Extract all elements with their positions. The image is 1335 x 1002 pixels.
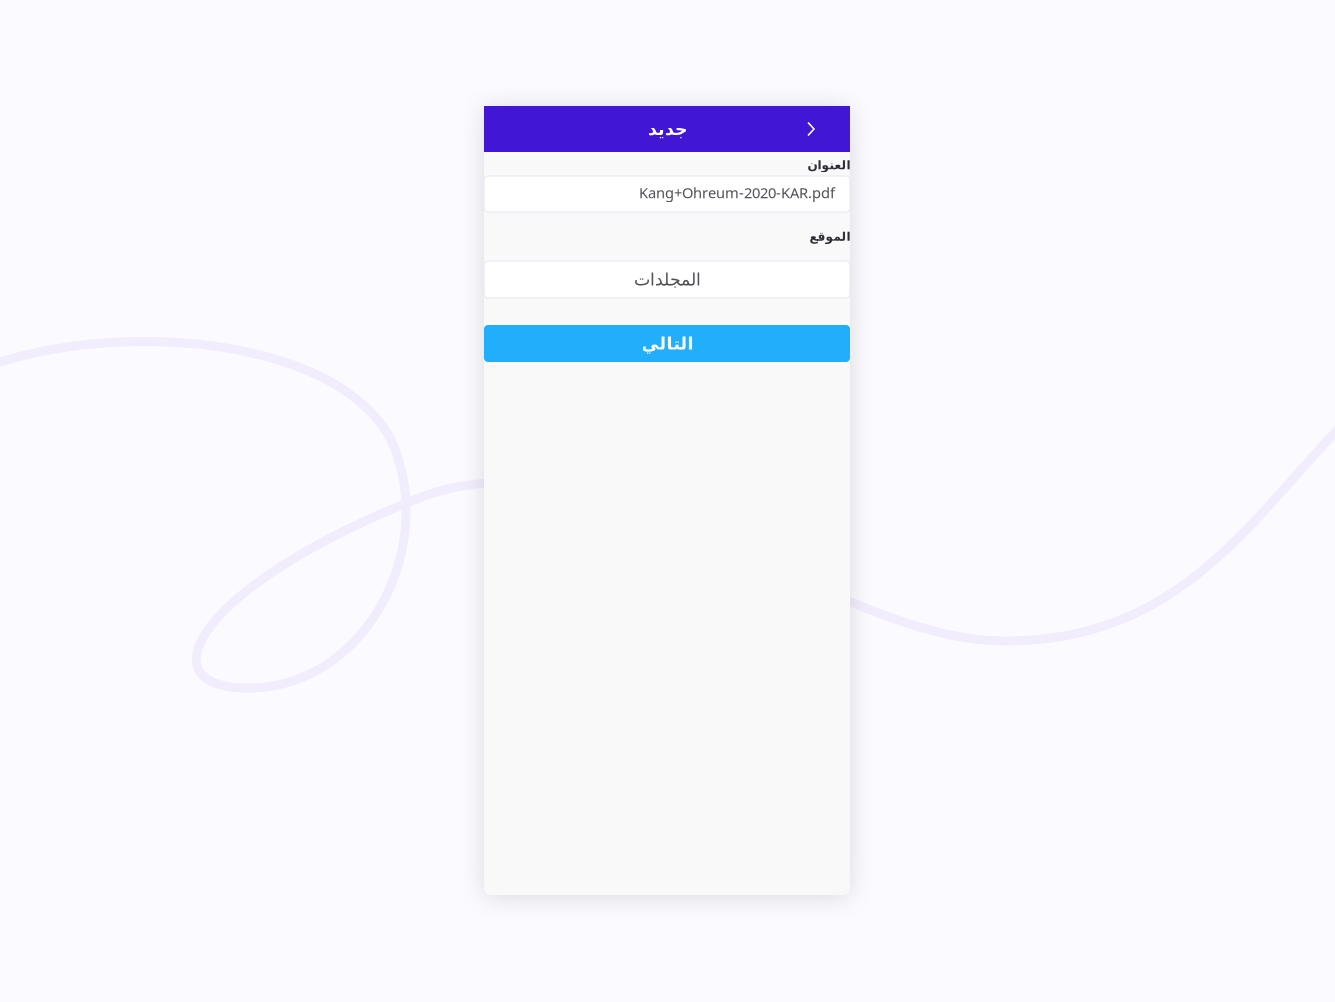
button[interactable]: Back xyxy=(789,106,833,151)
staticText: العنوان xyxy=(807,158,850,172)
staticText: جديد xyxy=(647,119,686,139)
staticText: الموقع xyxy=(809,230,850,243)
button[interactable]: المجلدات xyxy=(484,261,850,298)
staticText: التالي xyxy=(641,334,693,353)
staticText: Kang+Ohreum-2020-KAR.pdf xyxy=(639,183,835,202)
button[interactable]: التالي xyxy=(484,325,850,362)
staticText: المجلدات xyxy=(633,270,700,289)
